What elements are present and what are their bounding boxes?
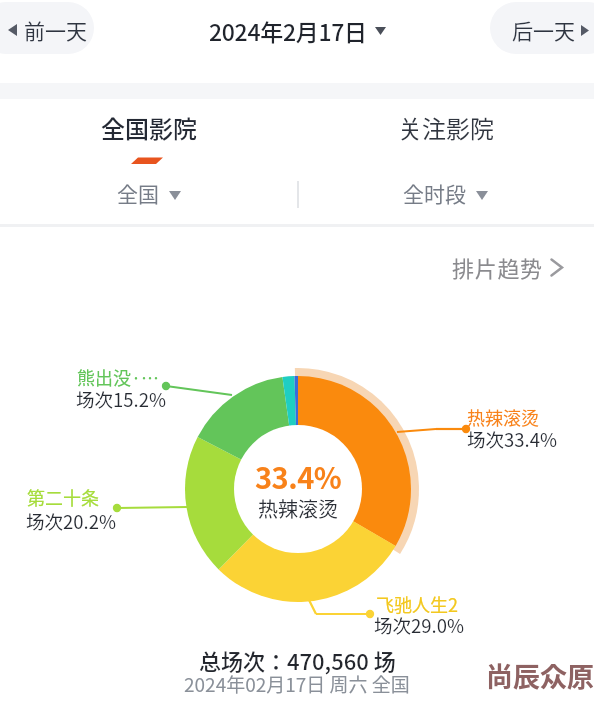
staticText: 场次20.2% <box>26 508 116 535</box>
staticText: 总场次：470,560 场 <box>199 644 396 676</box>
staticText: 全时段 <box>403 178 466 208</box>
staticText: 熊出没·… <box>77 364 160 390</box>
staticText: 33.4% <box>255 455 342 497</box>
staticText: 尚辰众原 <box>486 656 594 695</box>
button[interactable]: 前一天 <box>0 2 94 54</box>
staticText: 热辣滚烫 <box>258 494 338 523</box>
staticText: 场次29.0% <box>374 612 464 639</box>
staticText: 全国 <box>117 178 159 208</box>
staticText: 排片趋势 <box>452 251 543 283</box>
button[interactable]: 全国影院 <box>0 110 297 145</box>
button[interactable]: 排片趋势 <box>452 251 563 283</box>
staticText: 飞驰人生2 <box>376 591 458 617</box>
staticText: 热辣滚烫 <box>467 404 539 430</box>
staticText: 场次33.4% <box>467 426 557 453</box>
staticText: 关注影院 <box>398 110 494 145</box>
staticText: 2024年02月17日 周六 全国 <box>184 670 410 698</box>
staticText: 第二十条 <box>27 484 99 510</box>
button[interactable]: 全国 <box>0 178 297 208</box>
staticText: 前一天 <box>24 15 87 45</box>
button[interactable]: 全时段 <box>297 178 594 208</box>
button[interactable]: 2024年2月17日 <box>0 14 594 47</box>
staticText: 后一天 <box>512 15 575 45</box>
button[interactable]: 后一天 <box>490 2 594 54</box>
staticText: 2024年2月17日 <box>209 14 367 47</box>
staticText: 场次15.2% <box>76 386 166 413</box>
staticText: 全国影院 <box>101 110 197 145</box>
button[interactable]: 关注影院 <box>297 110 594 145</box>
